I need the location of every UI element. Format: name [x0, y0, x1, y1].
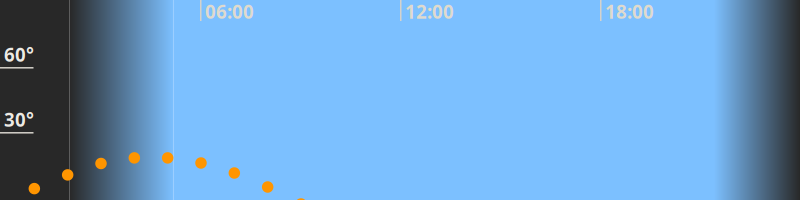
- button[interactable]: Sun elevation chart: [0, 0, 800, 200]
- staticText: 12:00: [405, 0, 454, 24]
- staticText: 30°: [4, 107, 34, 132]
- staticText: 60°: [4, 42, 34, 67]
- staticText: 06:00: [205, 0, 254, 24]
- staticText: 18:00: [605, 0, 654, 24]
